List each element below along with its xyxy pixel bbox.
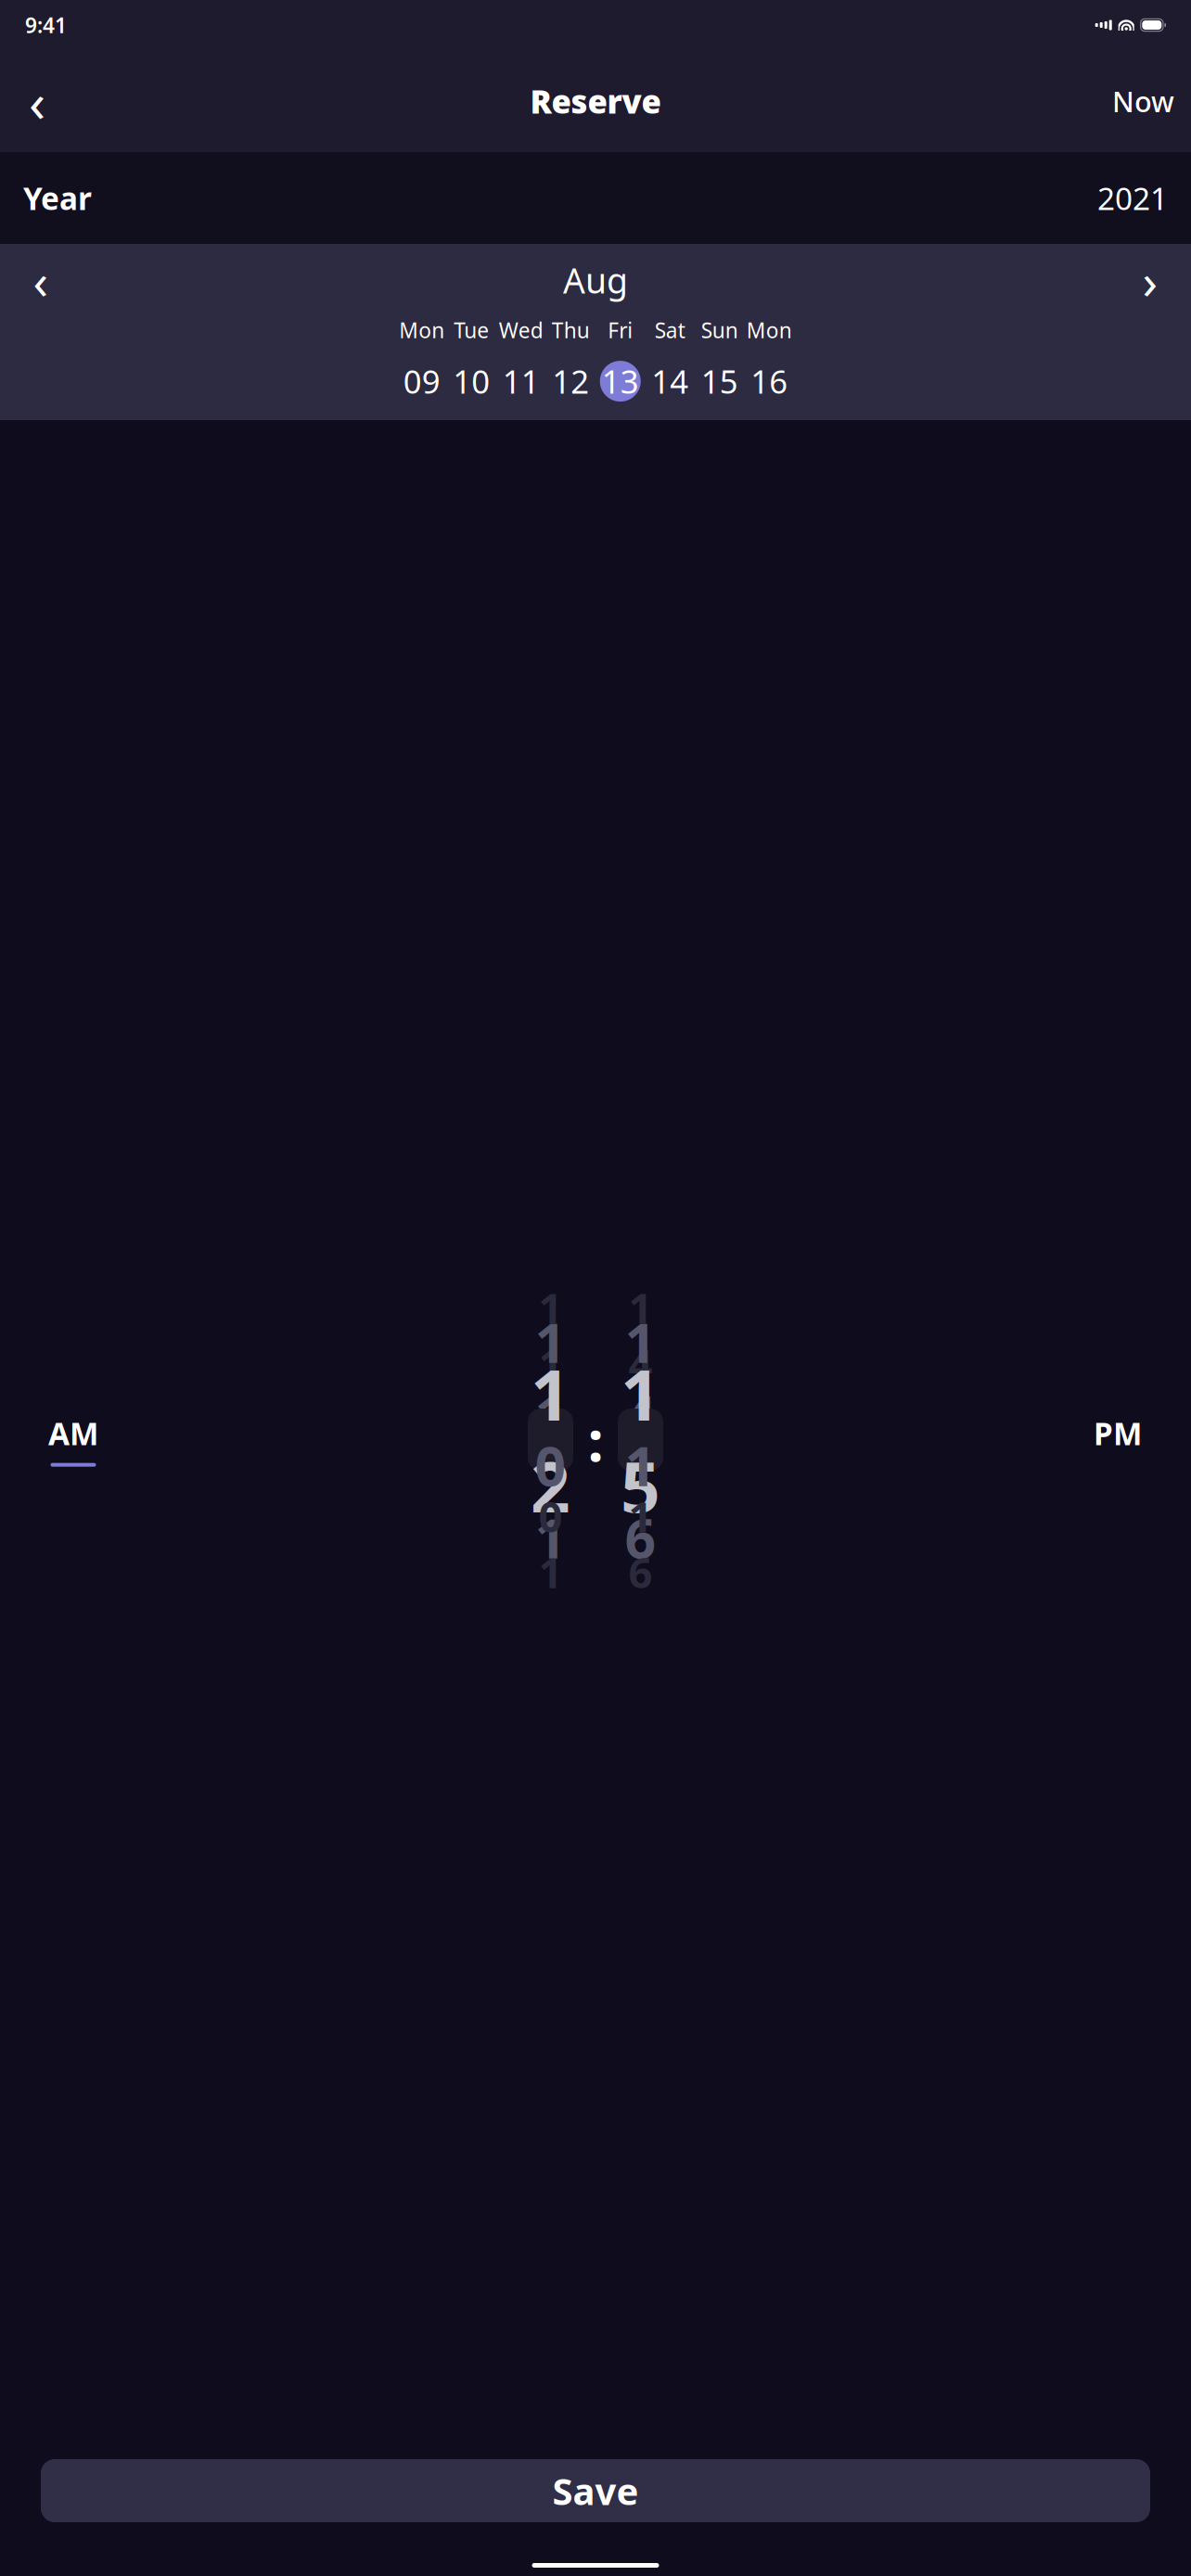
staticText: : xyxy=(588,1402,603,1477)
staticText: Aug xyxy=(563,257,628,303)
staticText: 14 xyxy=(625,1306,656,1450)
staticText: 16 xyxy=(625,1429,656,1574)
staticText: Now xyxy=(1112,82,1174,120)
staticText: ‹ xyxy=(33,247,49,313)
button[interactable]: Sat xyxy=(645,316,695,403)
button[interactable]: Tue xyxy=(447,316,496,403)
staticText: 14 xyxy=(651,360,688,403)
staticText: ‹ xyxy=(29,65,45,137)
staticText: Year xyxy=(23,177,92,219)
button[interactable]: Mon xyxy=(397,316,447,403)
staticText: 16 xyxy=(628,1488,653,1600)
button[interactable]: PM xyxy=(1067,1413,1169,1467)
staticText: 15 xyxy=(701,360,738,403)
button[interactable]: Wed xyxy=(496,316,546,403)
staticText: 10 xyxy=(453,360,490,403)
staticText: 01 xyxy=(535,1429,566,1574)
button[interactable]: Save xyxy=(41,2459,1150,2522)
button[interactable]: Back xyxy=(17,81,58,121)
button[interactable]: Previous month xyxy=(19,258,63,302)
staticText: 9:41 xyxy=(25,11,67,39)
staticText: Wed xyxy=(499,316,543,344)
button[interactable]: 15 xyxy=(618,1409,663,1471)
button[interactable]: Sun xyxy=(695,316,744,403)
staticText: 15 xyxy=(621,1348,660,1532)
staticText: AM xyxy=(48,1413,98,1454)
staticText: 2021 xyxy=(1097,177,1168,219)
staticText: 13 xyxy=(602,360,639,403)
staticText: Reserve xyxy=(530,80,661,122)
staticText: 12 xyxy=(531,1348,570,1532)
button[interactable]: AM xyxy=(22,1413,124,1467)
staticText: › xyxy=(1142,247,1158,313)
staticText: 16 xyxy=(751,360,788,403)
button[interactable]: Next month xyxy=(1128,258,1172,302)
staticText: 14 xyxy=(628,1280,653,1391)
staticText: 01 xyxy=(538,1488,563,1600)
staticText: Sat xyxy=(655,316,685,344)
staticText: Save xyxy=(552,2466,639,2515)
staticText: PM xyxy=(1094,1413,1142,1454)
staticText: Mon xyxy=(399,316,444,344)
staticText: 11 xyxy=(538,1280,563,1391)
button[interactable]: Year xyxy=(0,152,1191,244)
staticText: Tue xyxy=(454,316,489,344)
button[interactable]: Thu xyxy=(546,316,595,403)
staticText: 12 xyxy=(552,360,589,403)
staticText: Thu xyxy=(552,316,590,344)
button[interactable]: Fri xyxy=(595,316,645,403)
button[interactable]: Mon xyxy=(744,316,794,403)
button[interactable]: Now xyxy=(1112,81,1174,121)
staticText: 09 xyxy=(403,360,440,403)
staticText: 11 xyxy=(503,360,540,403)
staticText: Sun xyxy=(701,316,738,344)
staticText: 11 xyxy=(535,1306,566,1450)
staticText: Mon xyxy=(747,316,792,344)
staticText: Fri xyxy=(608,316,633,344)
button[interactable]: 12 xyxy=(528,1409,573,1471)
